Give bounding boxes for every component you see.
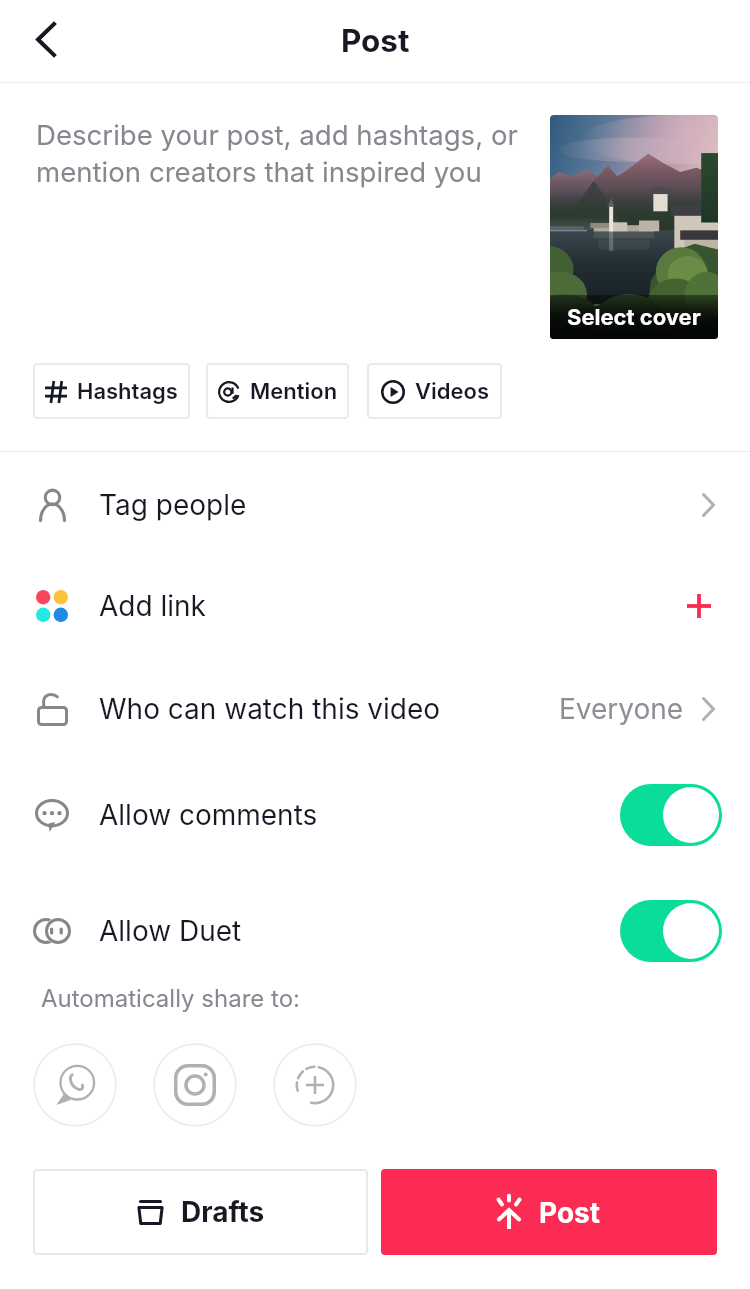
button[interactable]: Allow Duet [0, 868, 750, 994]
button[interactable]: Add link [0, 557, 750, 655]
button[interactable]: Videos [367, 363, 502, 419]
button[interactable]: Drafts [33, 1169, 368, 1255]
staticText: Allow comments [99, 798, 318, 832]
button[interactable]: Share to WhatsApp [33, 1043, 117, 1127]
staticText: Select cover [567, 304, 701, 331]
button[interactable]: Allow comments [0, 762, 750, 868]
button[interactable]: Back [5, 0, 87, 80]
staticText: Post [341, 22, 410, 60]
staticText: Automatically share to: [41, 984, 300, 1013]
staticText: Videos [415, 378, 489, 405]
staticText: Allow Duet [99, 914, 242, 948]
button[interactable]: Who can watch this video [0, 655, 750, 762]
button[interactable]: Post [381, 1169, 717, 1255]
button[interactable]: Allow Duet [620, 900, 722, 962]
button[interactable]: More share options [273, 1043, 357, 1127]
staticText: Describe your post, add hashtags, or men… [36, 118, 552, 189]
button[interactable]: Allow comments [620, 784, 722, 846]
staticText: Post [539, 1196, 601, 1230]
staticText: Who can watch this video [99, 692, 441, 726]
staticText: Everyone [559, 692, 684, 726]
staticText: Tag people [99, 488, 247, 522]
staticText: Add link [99, 589, 206, 623]
staticText: Drafts [181, 1195, 265, 1229]
button[interactable]: Mention [206, 363, 349, 419]
staticText: Hashtags [77, 378, 178, 405]
staticText: Mention [250, 378, 338, 405]
button[interactable]: Tag people [0, 452, 750, 557]
button[interactable]: Select cover [550, 115, 718, 339]
button[interactable]: Share to Instagram [153, 1043, 237, 1127]
button[interactable]: Hashtags [33, 363, 190, 419]
